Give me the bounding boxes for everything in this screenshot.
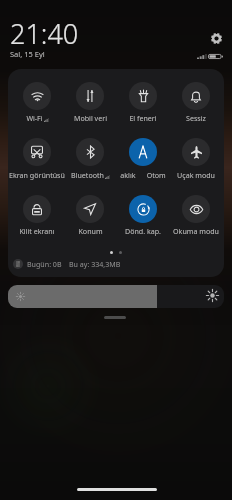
- staticText: Konum: [78, 226, 103, 236]
- staticText: El feneri: [129, 113, 157, 123]
- button[interactable]: Ekran görüntüsü: [10, 138, 64, 178]
- staticText: Uçak modu: [177, 170, 215, 180]
- staticText: Bluetooth: [71, 170, 104, 180]
- staticText: Sal, 15 Eyl: [10, 49, 45, 59]
- button[interactable]: Konum: [63, 195, 117, 235]
- staticText: 21:40: [10, 15, 79, 52]
- button[interactable]: aklık Otom: [116, 138, 170, 178]
- button[interactable]: Kilit ekranı: [10, 195, 64, 235]
- button[interactable]: Wi-Fi: [10, 82, 64, 122]
- button[interactable]: Sessiz: [169, 82, 223, 122]
- button[interactable]: El feneri: [116, 82, 170, 122]
- staticText: Bu ay: 334,3MB: [69, 259, 121, 269]
- button[interactable]: Settings: [206, 28, 226, 48]
- staticText: Mobil veri: [74, 113, 107, 123]
- staticText: Sessiz: [186, 113, 206, 123]
- staticText: Okuma modu: [173, 226, 219, 236]
- staticText: Kilit ekranı: [19, 226, 55, 236]
- button[interactable]: Dönd. kap.: [116, 195, 170, 235]
- staticText: Dönd. kap.: [125, 226, 161, 236]
- button[interactable]: Uçak modu: [169, 138, 223, 178]
- staticText: aklık Otom: [120, 170, 166, 180]
- staticText: Ekran görüntüsü: [9, 170, 65, 180]
- button[interactable]: Okuma modu: [169, 195, 223, 235]
- staticText: Wi-Fi: [26, 113, 43, 123]
- staticText: Bugün: 0B: [27, 259, 62, 269]
- button[interactable]: Bluetooth: [63, 138, 117, 178]
- button[interactable]: Brightness: [8, 285, 224, 308]
- button[interactable]: Mobil veri: [63, 82, 117, 122]
